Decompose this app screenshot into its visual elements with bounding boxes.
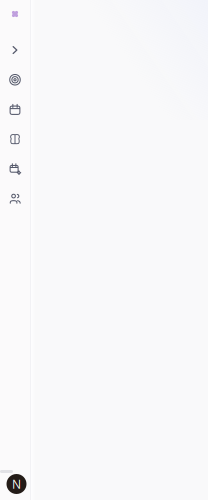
button[interactable]: People <box>0 184 30 213</box>
button[interactable]: Calendar <box>0 95 30 124</box>
button[interactable]: Schedule <box>0 154 30 184</box>
button[interactable]: Memory <box>0 124 30 154</box>
button[interactable]: Home <box>0 9 30 19</box>
button[interactable]: Account <box>0 474 30 494</box>
button[interactable]: Expand sidebar <box>0 35 30 65</box>
button[interactable]: Goals <box>0 65 30 95</box>
staticText: N <box>12 476 21 492</box>
